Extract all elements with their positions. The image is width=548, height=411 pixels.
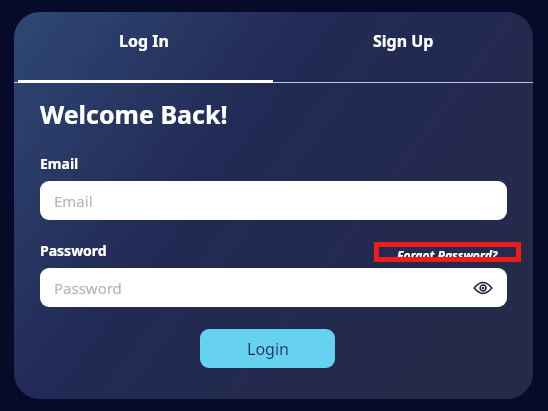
button[interactable]: Show password bbox=[471, 276, 495, 300]
staticText: Email bbox=[40, 154, 79, 173]
button[interactable]: Login bbox=[200, 329, 335, 368]
button[interactable]: Forgot Password? bbox=[379, 247, 516, 257]
staticText: Log In bbox=[119, 30, 169, 52]
button[interactable]: Sign Up bbox=[273, 12, 533, 70]
button[interactable]: Email bbox=[40, 181, 507, 220]
staticText: Email bbox=[54, 191, 93, 211]
staticText: Sign Up bbox=[373, 30, 434, 52]
button[interactable]: Password bbox=[40, 268, 507, 307]
staticText: Welcome Back! bbox=[40, 97, 228, 131]
staticText: Forgot Password? bbox=[397, 247, 498, 257]
button[interactable]: Log In bbox=[14, 12, 273, 70]
staticText: Password bbox=[40, 241, 107, 260]
staticText: Login bbox=[247, 338, 289, 360]
staticText: Password bbox=[54, 278, 122, 298]
